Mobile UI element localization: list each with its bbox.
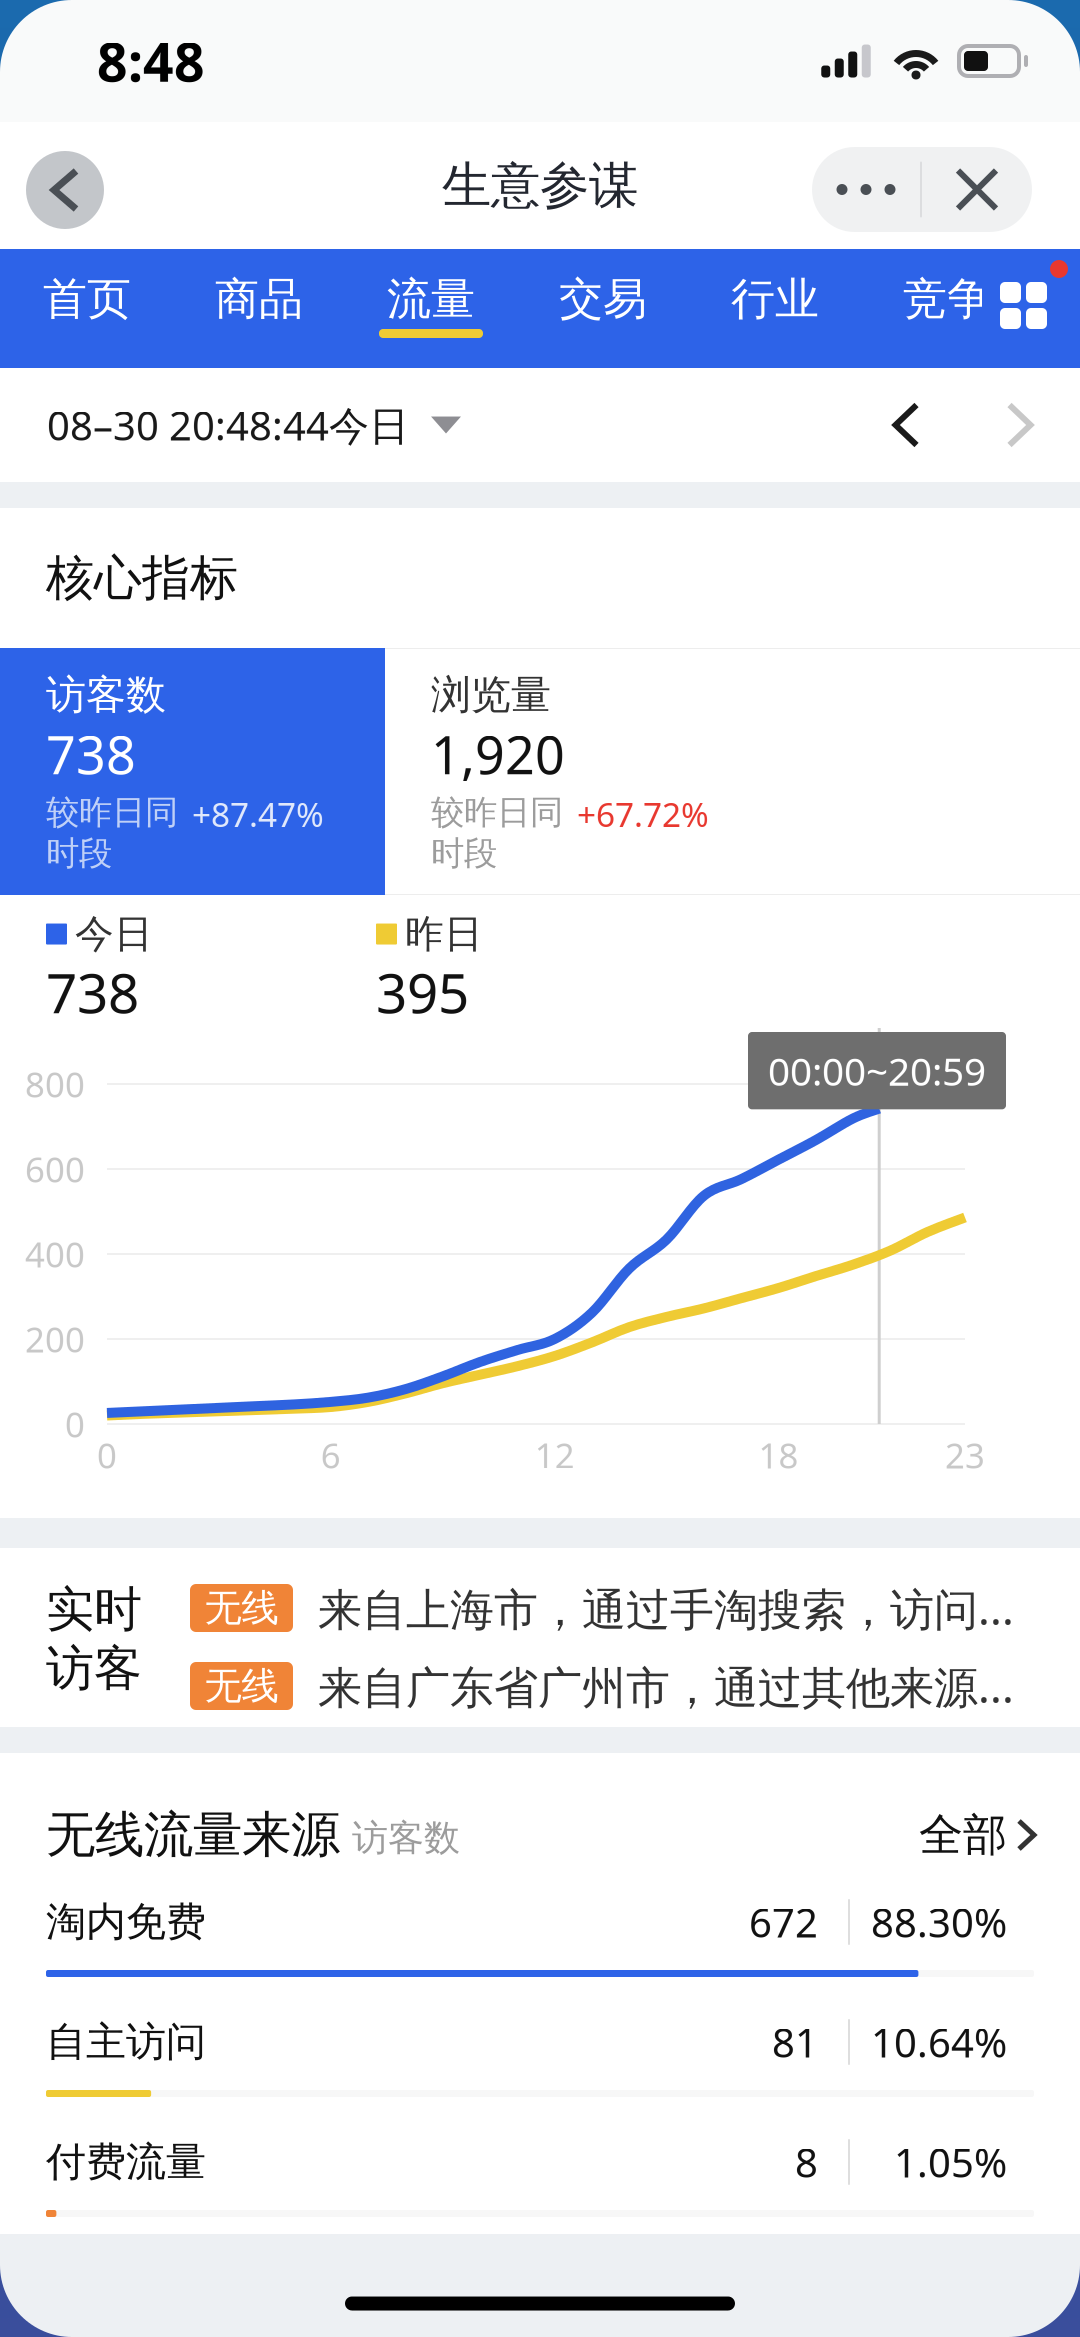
button[interactable]: 流量 [345,249,517,368]
staticText: 较昨日同 时段 [431,792,563,874]
button[interactable]: 全部 [919,1805,1034,1865]
staticText: +87.47% [192,792,324,836]
staticText: 400 [25,1231,85,1277]
staticText: 0 [65,1401,85,1447]
button[interactable]: 无线 [190,1570,1050,1646]
staticText: 738 [46,956,139,1028]
button[interactable]: All modules [982,249,1080,368]
staticText: 1.05% [894,2135,1007,2188]
staticText: 首页 [43,272,131,326]
staticText: 核心指标 [46,548,238,607]
button[interactable]: 08–30 20:48:44今日 [47,368,461,482]
staticText: 无线 [204,1585,278,1631]
staticText: 访客数 [352,1816,460,1860]
staticText: 1,920 [431,719,565,789]
button[interactable]: 交易 [517,249,689,368]
staticText: 600 [25,1146,85,1192]
staticText: 来自广东省广州市，通过其他来源，访问… [318,1657,1018,1715]
staticText: 浏览量 [431,670,551,719]
staticText: 来自上海市，通过手淘搜索，访问商品详… [318,1579,1018,1637]
button[interactable]: 浏览量 [385,648,1080,895]
staticText: 10.64% [871,2015,1007,2068]
button[interactable]: Next period [980,385,1060,465]
staticText: 实时 访客 [46,1580,142,1698]
button[interactable]: 商品 [173,249,345,368]
button[interactable]: 访客数 [0,648,385,895]
staticText: 8:48 [97,26,205,96]
staticText: 88.30% [871,1895,1007,1948]
staticText: 0 [97,1432,117,1478]
button[interactable]: More [812,147,920,232]
button[interactable]: 淘内免费 [46,1886,1034,2006]
staticText: 行业 [731,272,819,326]
staticText: 全部 [919,1808,1007,1862]
staticText: 较昨日同 时段 [46,792,178,874]
button[interactable]: 自主访问 [46,2006,1034,2126]
button[interactable]: 无线 [190,1648,1050,1724]
staticText: 672 [749,1895,818,1948]
button[interactable]: 首页 [1,249,173,368]
staticText: 交易 [559,272,647,326]
staticText: 200 [25,1316,85,1362]
staticText: 无线流量来源 [46,1804,340,1865]
staticText: 800 [25,1061,85,1107]
staticText: 738 [46,719,136,789]
staticText: 生意参谋 [442,155,638,216]
staticText: 竞争 [903,272,991,326]
staticText: 淘内免费 [46,1897,206,1946]
button[interactable]: 竞争 [861,249,1033,368]
staticText: 81 [772,2015,818,2068]
staticText: 今日 [75,910,153,958]
button[interactable]: Close [922,147,1032,232]
button[interactable]: 付费流量 [46,2126,1034,2246]
staticText: 付费流量 [46,2137,206,2186]
staticText: 流量 [387,272,475,326]
button[interactable]: Previous period [866,385,946,465]
staticText: 8 [795,2135,818,2188]
button[interactable]: 行业 [689,249,861,368]
staticText: 08–30 20:48:44今日 [47,398,409,451]
staticText: 无线 [204,1663,278,1709]
button[interactable]: Back [26,151,104,229]
staticText: 395 [376,956,469,1028]
staticText: 6 [321,1432,341,1478]
staticText: 12 [535,1432,575,1478]
staticText: 00:00~20:59 [768,1045,986,1096]
staticText: 自主访问 [46,2017,206,2066]
staticText: 23 [945,1432,985,1478]
staticText: 访客数 [46,670,166,719]
staticText: 商品 [215,272,303,326]
staticText: 昨日 [405,910,483,958]
staticText: 18 [758,1432,798,1478]
staticText: +67.72% [577,792,709,836]
